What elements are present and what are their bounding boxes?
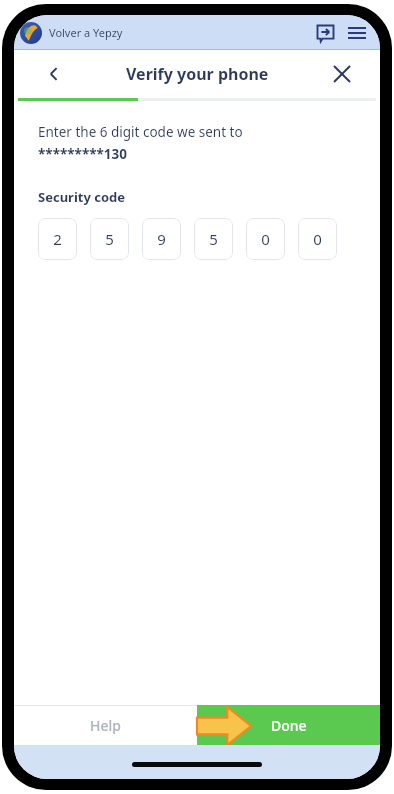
button[interactable]: 0 bbox=[246, 218, 285, 260]
staticText: 5 bbox=[209, 229, 218, 249]
staticText: 0 bbox=[313, 229, 322, 249]
button[interactable]: 5 bbox=[90, 218, 129, 260]
staticText: 9 bbox=[157, 229, 166, 249]
button[interactable]: 5 bbox=[194, 218, 233, 260]
button[interactable]: 2 bbox=[38, 218, 77, 260]
button[interactable]: Done bbox=[197, 705, 380, 745]
staticText: 5 bbox=[105, 229, 114, 249]
button[interactable]: 9 bbox=[142, 218, 181, 260]
staticText: Verify your phone bbox=[126, 63, 269, 85]
staticText: Enter the 6 digit code we sent to bbox=[38, 123, 243, 141]
staticText: Security code bbox=[38, 188, 126, 206]
button[interactable]: 0 bbox=[298, 218, 337, 260]
staticText: Done bbox=[271, 716, 307, 735]
button[interactable]: Menu bbox=[344, 20, 370, 46]
staticText: *********130 bbox=[38, 145, 128, 163]
staticText: Volver a Yepzy bbox=[49, 25, 123, 40]
staticText: 0 bbox=[261, 229, 270, 249]
button[interactable]: Back bbox=[38, 58, 70, 90]
staticText: 2 bbox=[53, 229, 62, 249]
staticText: Help bbox=[90, 716, 121, 735]
button[interactable]: Close bbox=[326, 58, 358, 90]
button[interactable]: Messages bbox=[312, 20, 338, 46]
button[interactable]: Help bbox=[14, 705, 197, 745]
